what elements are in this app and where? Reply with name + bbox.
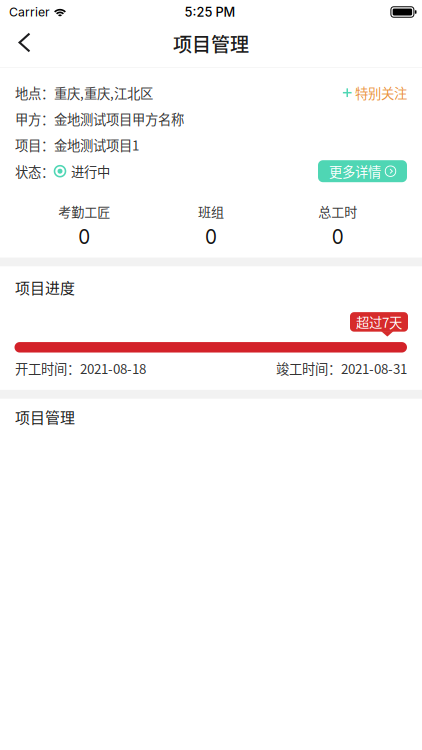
staticText: 开工时间：2021-08-18 bbox=[15, 359, 146, 378]
staticText: 项目管理 bbox=[15, 406, 75, 427]
staticText: 班组 bbox=[198, 202, 224, 221]
staticText: 特别关注 bbox=[355, 83, 407, 102]
staticText: 0 bbox=[205, 226, 217, 248]
staticText: 竣工时间：2021-08-31 bbox=[276, 359, 407, 378]
button[interactable]: 更多详情 bbox=[318, 160, 407, 182]
staticText: 甲方：金地测试项目甲方名称 bbox=[15, 109, 184, 128]
staticText: 项目进度 bbox=[15, 276, 75, 298]
staticText: 进行中 bbox=[71, 161, 110, 181]
staticText: Carrier bbox=[9, 5, 50, 19]
staticText: 地点：重庆,重庆,江北区 bbox=[15, 83, 153, 102]
staticText: 项目管理 bbox=[173, 30, 249, 57]
staticText: 0 bbox=[332, 226, 344, 248]
button[interactable]: 特别关注 bbox=[342, 80, 407, 106]
staticText: 状态： bbox=[15, 161, 54, 181]
staticText: 总工时 bbox=[318, 202, 357, 221]
staticText: 超过7天 bbox=[356, 312, 402, 332]
staticText: 项目：金地测试项目1 bbox=[15, 135, 139, 154]
staticText: 5:25 PM bbox=[184, 4, 235, 20]
staticText: 考勤工匠 bbox=[58, 202, 110, 221]
button[interactable]: Back bbox=[0, 24, 46, 67]
staticText: 0 bbox=[78, 226, 90, 248]
staticText: 更多详情 bbox=[329, 161, 381, 181]
